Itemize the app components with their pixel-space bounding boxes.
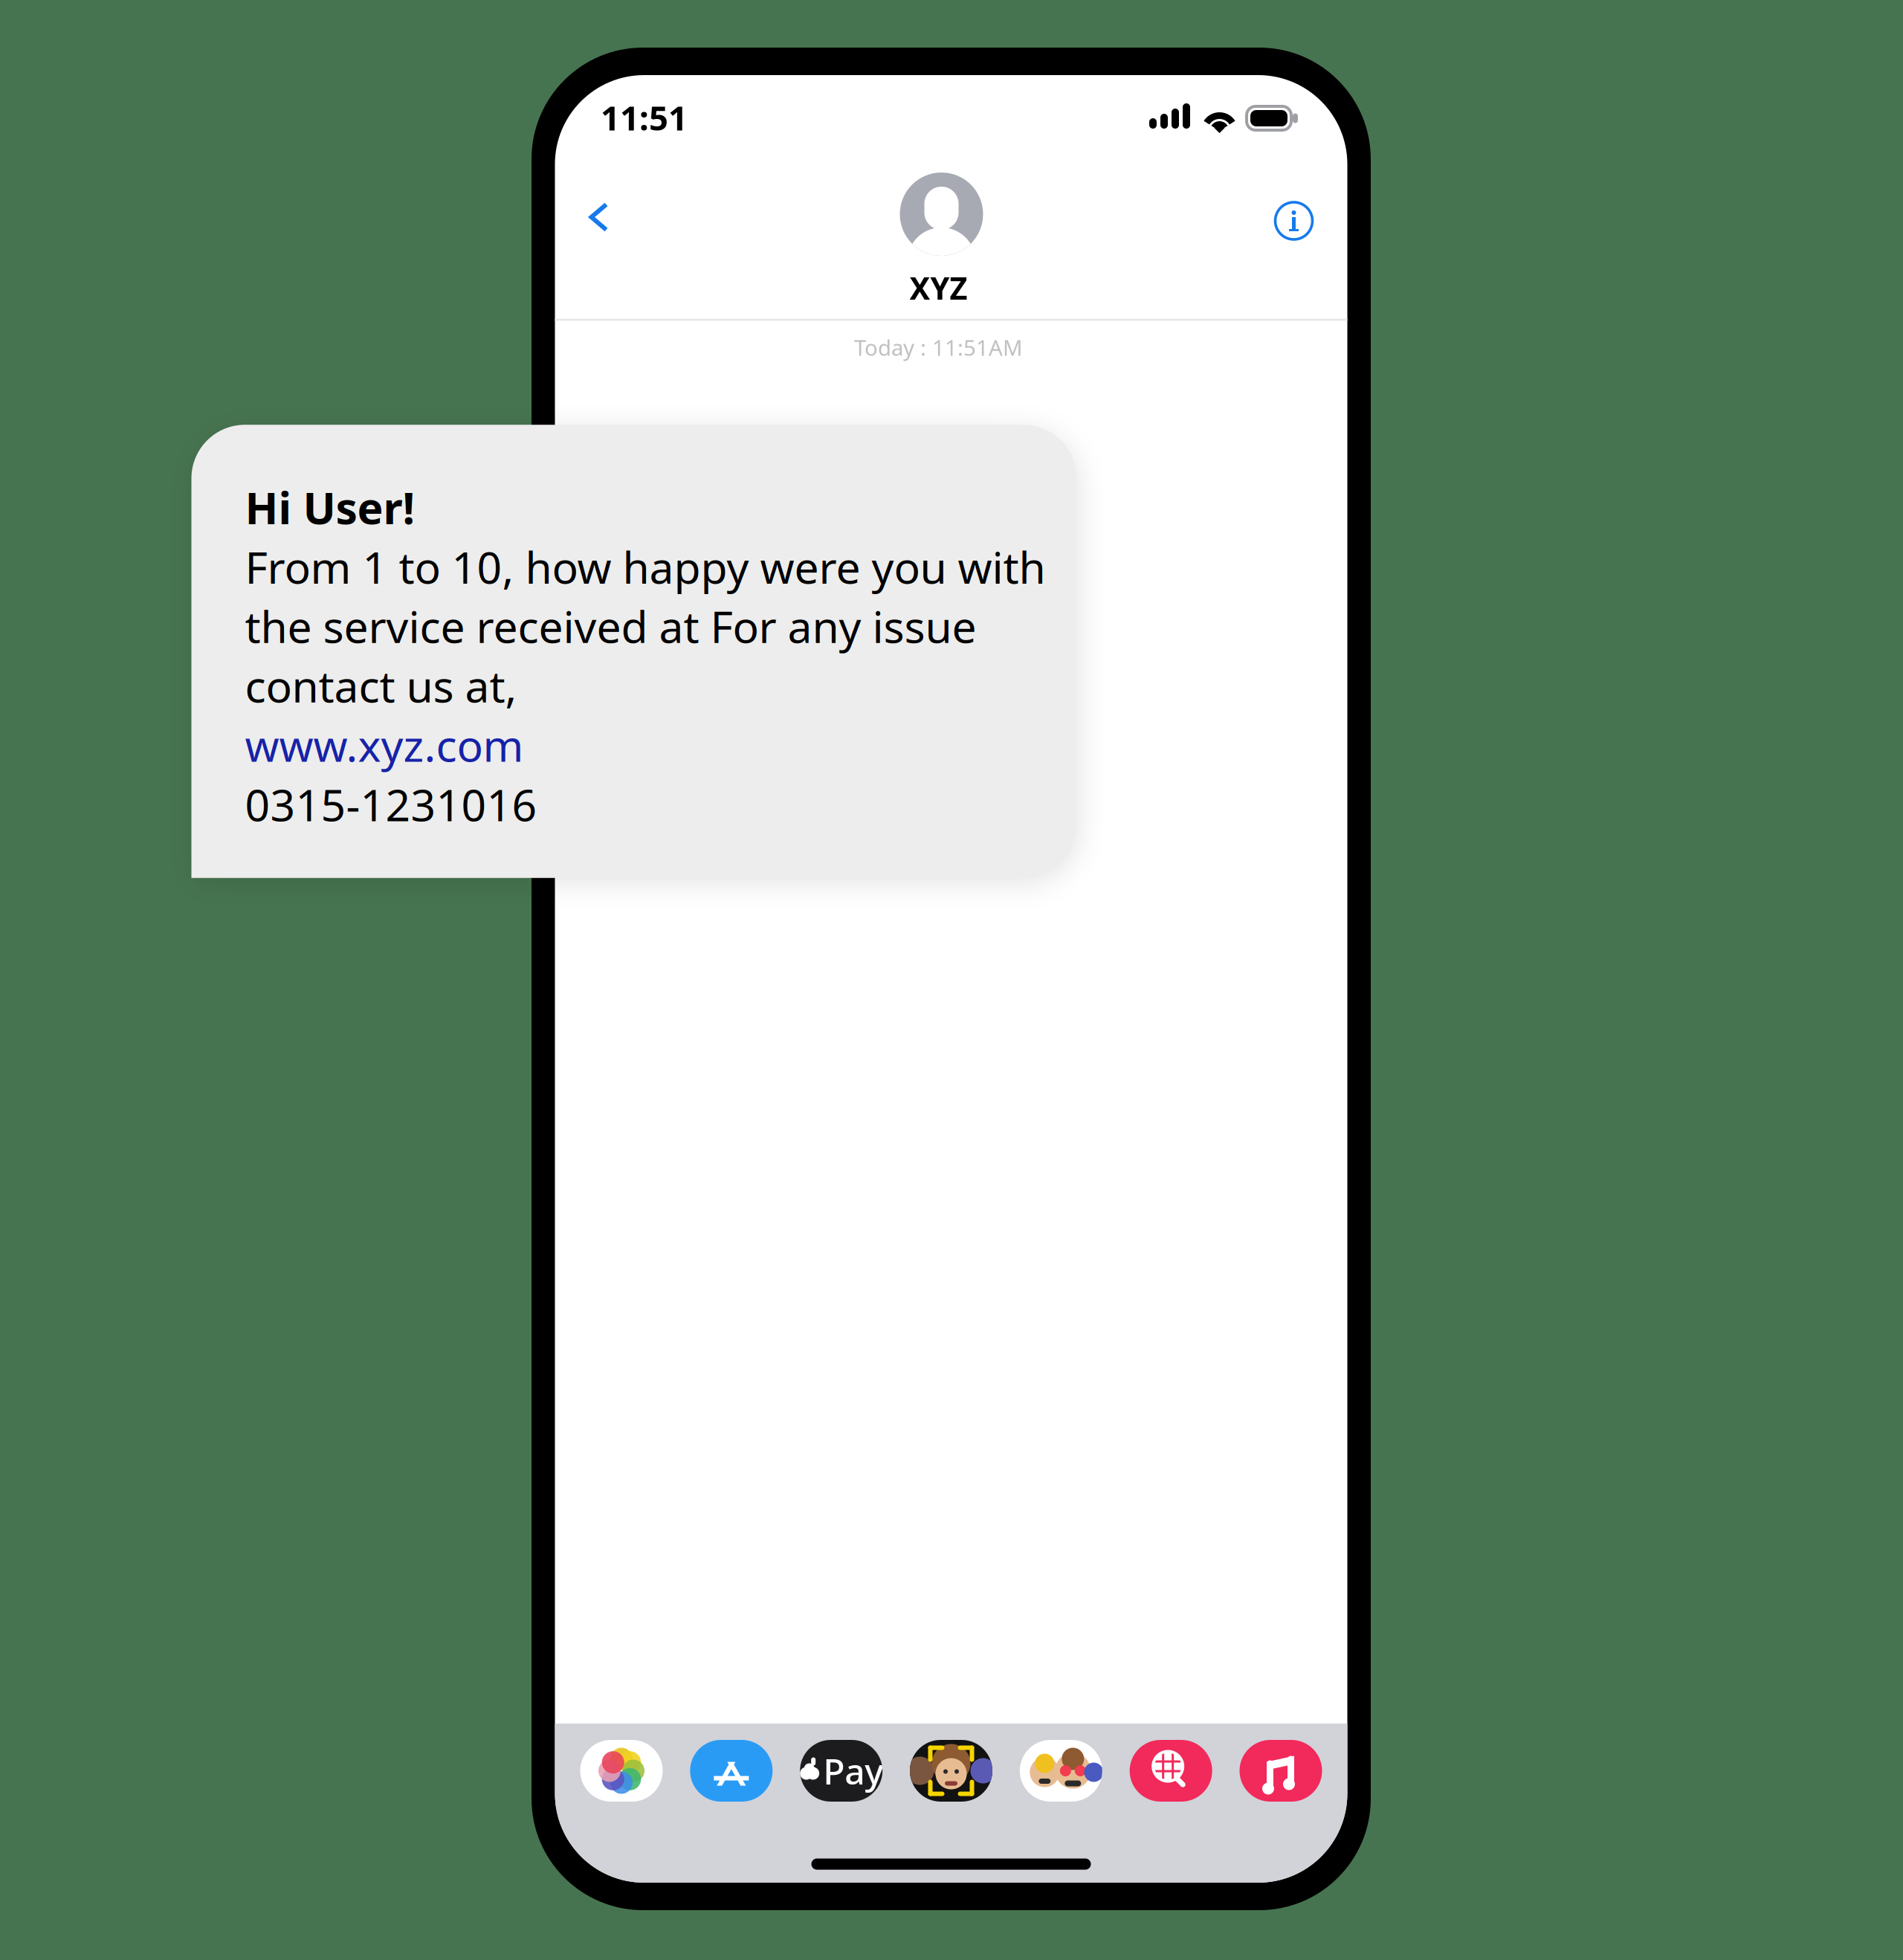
button[interactable]: Details [1257, 184, 1330, 257]
staticText: Today : 11:51AM [854, 333, 1023, 362]
staticText: Pay [823, 1747, 883, 1794]
staticText: Hi User! [245, 478, 415, 536]
staticText: 0315-1231016 [245, 775, 537, 833]
button[interactable]: www.xyz.com [245, 716, 524, 774]
staticText: From 1 to 10, how happy were you with [245, 538, 1046, 596]
button[interactable]: App Store [690, 1740, 773, 1802]
staticText: the service received at For any issue [245, 597, 976, 655]
staticText: www.xyz.com [245, 716, 524, 774]
staticText: contact us at, [245, 657, 517, 714]
button[interactable]: Music [1240, 1740, 1322, 1802]
button[interactable]: Photos [580, 1740, 663, 1802]
button[interactable]: Memoji stickers [1020, 1740, 1102, 1802]
button[interactable]: Memoji [910, 1740, 992, 1802]
button[interactable]: Back [570, 184, 628, 251]
button[interactable]: Images [1130, 1740, 1212, 1802]
staticText: 11:51 [601, 95, 688, 140]
button[interactable]: Apple Pay [800, 1740, 883, 1802]
staticText: XYZ [910, 267, 967, 308]
